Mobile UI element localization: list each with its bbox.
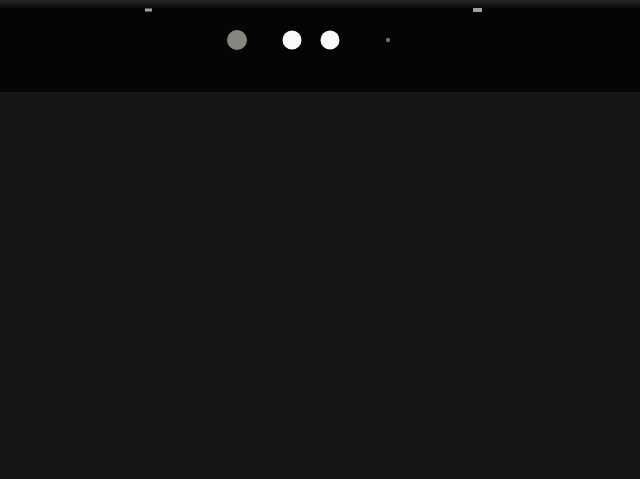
button[interactable]: Indicator four	[373, 30, 393, 50]
button[interactable]: Indicator three	[315, 25, 345, 55]
button[interactable]: Indicator two	[277, 25, 307, 55]
button[interactable]: Indicator one	[222, 25, 252, 55]
